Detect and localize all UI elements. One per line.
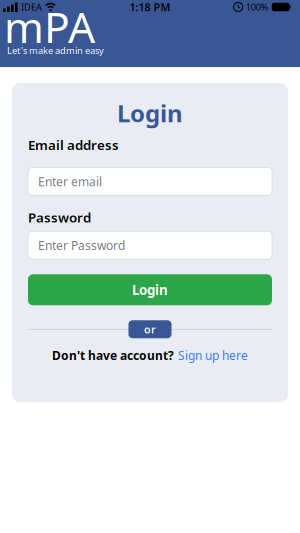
staticText: 1:18 PM [129, 0, 170, 14]
staticText: Don't have account? [52, 347, 174, 363]
button[interactable]: Enter email [28, 168, 272, 196]
staticText: Login [132, 281, 168, 299]
button[interactable]: Enter Password [28, 231, 272, 259]
staticText: Login [117, 97, 183, 129]
staticText: Password [28, 209, 91, 226]
staticText: IDEA [21, 1, 42, 13]
staticText: 100% [246, 1, 269, 13]
staticText: Email address [28, 136, 119, 154]
staticText: or [144, 322, 156, 336]
staticText: Enter Password [38, 237, 125, 253]
staticText: mPA [4, 0, 95, 55]
staticText: Enter email [38, 174, 102, 189]
button[interactable]: Sign up here [178, 347, 248, 363]
button[interactable]: Login [28, 274, 272, 305]
staticText: Let's make admin easy [7, 44, 104, 57]
staticText: Sign up here [178, 347, 248, 363]
button[interactable]: or [128, 320, 171, 338]
